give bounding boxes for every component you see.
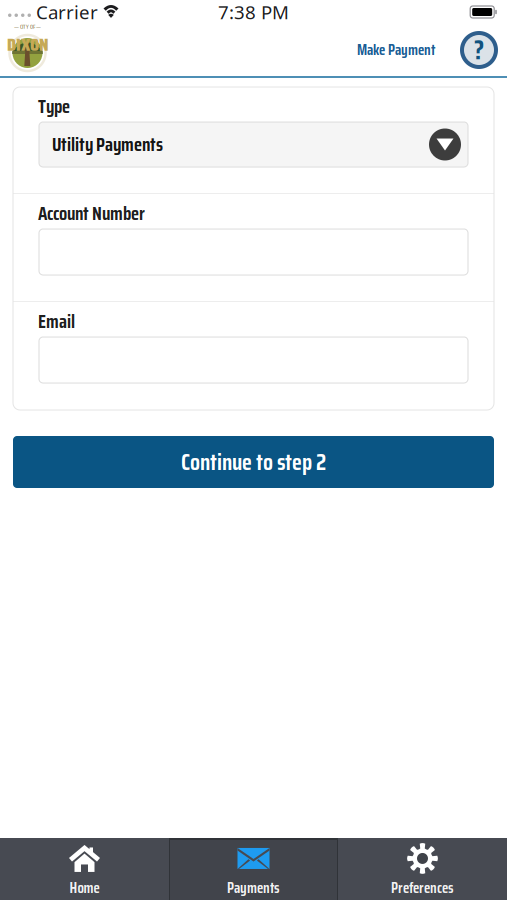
button[interactable]: Home — [0, 838, 169, 900]
button[interactable] — [13, 229, 494, 275]
staticText: ? — [474, 29, 484, 71]
staticText: DIXON — [7, 30, 48, 59]
staticText: Continue to step 2 — [181, 444, 326, 480]
button[interactable]: Utility Payments — [13, 122, 494, 167]
button[interactable]: Payments — [169, 838, 338, 900]
staticText: Preferences — [391, 876, 454, 900]
staticText: Make Payment — [357, 38, 435, 62]
button[interactable] — [13, 337, 494, 383]
button[interactable]: Help — [455, 26, 503, 74]
staticText: Utility Payments — [52, 130, 163, 159]
staticText: Carrier — [36, 0, 98, 24]
staticText: Email — [38, 307, 75, 336]
button[interactable]: Make Payment — [349, 28, 443, 72]
staticText: — CITY OF — — [14, 22, 41, 31]
staticText: Account Number — [38, 199, 145, 228]
staticText: Home — [69, 876, 99, 900]
staticText: Type — [38, 92, 70, 121]
staticText: Payments — [227, 876, 280, 900]
button[interactable]: Preferences — [338, 838, 507, 900]
staticText: 7:38 PM — [218, 0, 289, 24]
button[interactable]: Continue to step 2 — [13, 436, 494, 488]
